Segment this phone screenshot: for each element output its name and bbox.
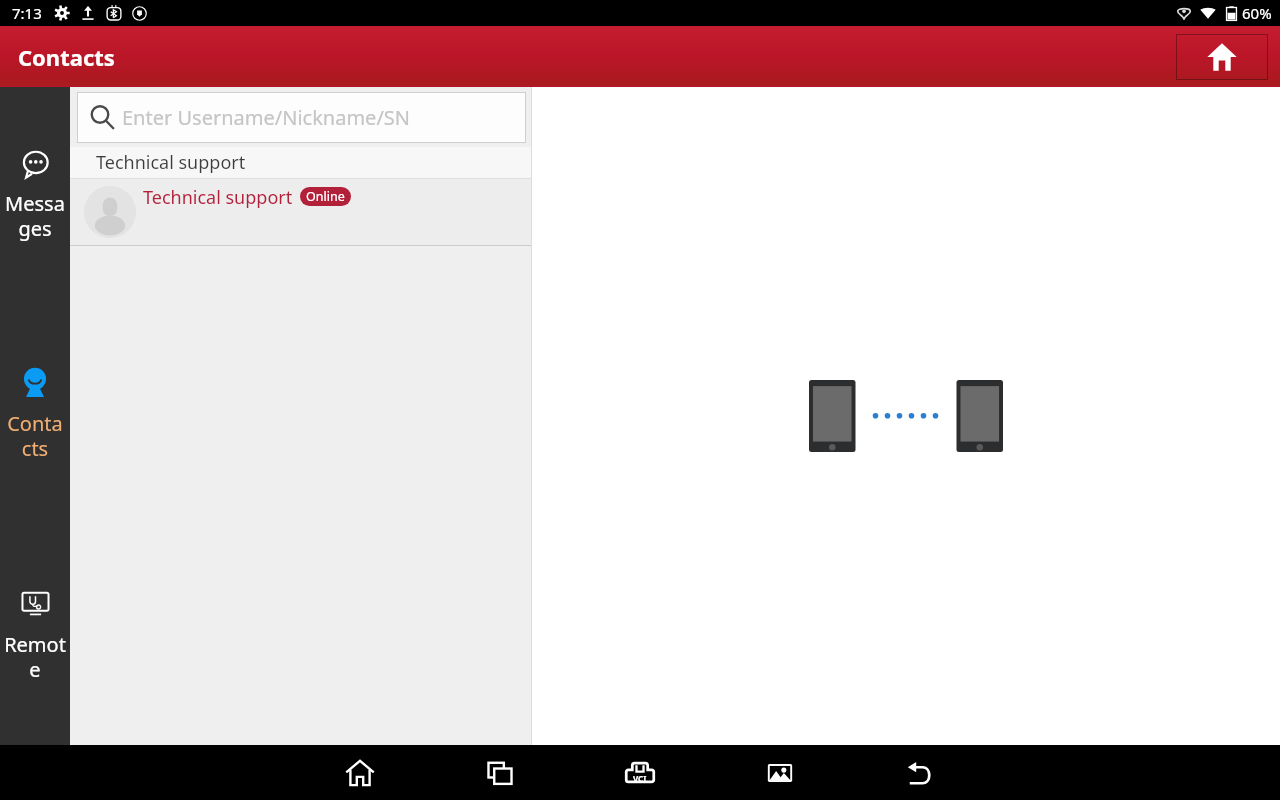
staticText: Messa ges — [5, 190, 65, 242]
staticText: VCI — [633, 773, 647, 784]
button[interactable]: Remot e — [0, 589, 70, 697]
button[interactable]: Conta cts — [0, 367, 70, 475]
staticText: Conta cts — [7, 410, 63, 462]
button[interactable]: Technical support — [70, 179, 532, 245]
staticText: Online — [306, 188, 345, 205]
button[interactable]: Gallery — [710, 745, 850, 800]
staticText: Remot e — [4, 631, 66, 683]
button[interactable]: Home — [290, 745, 430, 800]
button[interactable]: VCI — [570, 745, 710, 800]
staticText: Contacts — [18, 42, 115, 72]
button[interactable]: Recent apps — [430, 745, 570, 800]
staticText: Enter Username/Nickname/SN — [122, 104, 410, 131]
button[interactable]: Search contacts — [77, 92, 526, 143]
staticText: 7:13 — [12, 3, 42, 23]
button[interactable]: Back — [850, 745, 990, 800]
staticText: 60% — [1242, 3, 1272, 23]
button[interactable]: Home — [1176, 34, 1268, 80]
staticText: Technical support — [96, 150, 246, 175]
staticText: Technical support — [143, 185, 293, 210]
button[interactable]: Messa ges — [0, 150, 70, 258]
